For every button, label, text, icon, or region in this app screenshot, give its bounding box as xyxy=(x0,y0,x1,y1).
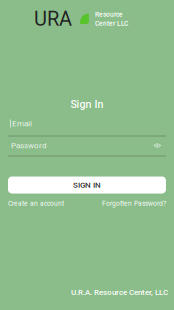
staticText: Resource xyxy=(95,11,123,18)
button[interactable]: Create an account xyxy=(8,199,64,207)
staticText: U.R.A. Resource Center, LLC xyxy=(71,288,168,297)
staticText: Sign In xyxy=(70,98,103,110)
staticText: SIGN IN xyxy=(73,180,101,190)
staticText: Email xyxy=(12,119,32,128)
button[interactable]: Show password xyxy=(152,143,166,148)
staticText: Center LLC xyxy=(95,19,128,27)
button[interactable]: SIGN IN xyxy=(8,176,166,193)
button[interactable]: Forgotten Password? xyxy=(102,199,166,207)
staticText: Create an account xyxy=(8,199,64,207)
staticText: URA xyxy=(34,7,72,31)
staticText: Password xyxy=(11,141,47,150)
staticText: Forgotten Password? xyxy=(102,199,166,207)
